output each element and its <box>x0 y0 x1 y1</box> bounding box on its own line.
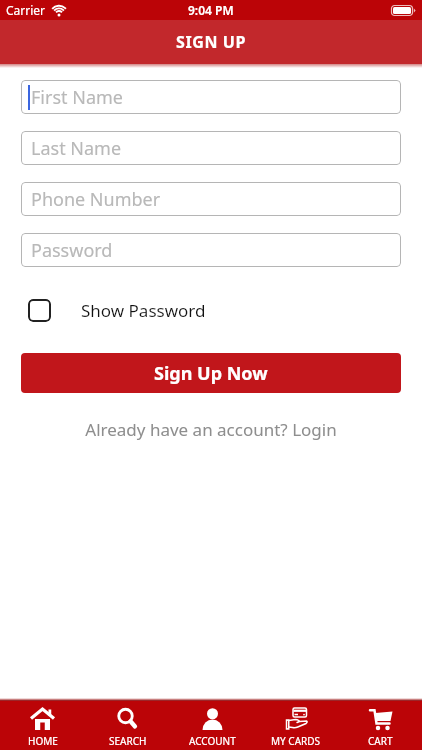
staticText: Last Name <box>31 136 122 161</box>
button[interactable]: CART <box>338 701 422 750</box>
staticText: Phone Number <box>31 187 161 212</box>
button[interactable]: First Name <box>21 80 401 114</box>
staticText: SEARCH <box>109 734 147 748</box>
staticText: First Name <box>31 85 123 110</box>
button[interactable]: Password <box>21 233 401 267</box>
staticText: ACCOUNT <box>189 734 236 748</box>
staticText: SIGN UP <box>176 31 247 53</box>
button[interactable]: Phone Number <box>21 182 401 216</box>
button[interactable]: Show Password <box>21 299 206 322</box>
button[interactable]: Sign Up Now <box>21 353 401 393</box>
staticText: CART <box>368 734 393 748</box>
staticText: Sign Up Now <box>154 361 268 386</box>
staticText: HOME <box>28 734 58 748</box>
staticText: MY CARDS <box>271 734 321 748</box>
button[interactable]: ACCOUNT <box>170 701 254 750</box>
button[interactable]: Last Name <box>21 131 401 165</box>
staticText: Password <box>31 238 113 263</box>
button[interactable]: HOME <box>0 701 85 750</box>
staticText: 9:04 PM <box>188 2 234 18</box>
staticText: Carrier <box>6 2 46 18</box>
button[interactable]: SEARCH <box>85 701 170 750</box>
button[interactable]: MY CARDS <box>254 701 338 750</box>
staticText: Show Password <box>81 299 206 322</box>
button[interactable]: Already have an account? Login <box>21 418 401 441</box>
